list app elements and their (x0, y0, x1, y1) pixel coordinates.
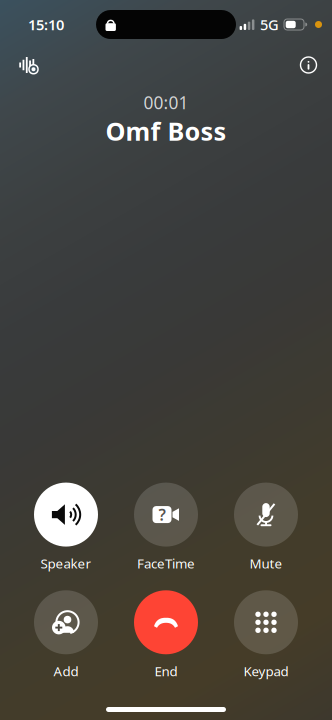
staticText: Add (53, 662, 78, 680)
button[interactable]: End (117, 590, 215, 680)
staticText: FaceTime (137, 555, 195, 572)
staticText: End (154, 662, 177, 680)
staticText: Speaker (40, 555, 91, 572)
button[interactable]: Add (17, 590, 115, 680)
button[interactable]: Keypad (217, 590, 315, 680)
button[interactable]: ? (117, 483, 215, 572)
button[interactable]: Speaker (17, 483, 115, 572)
button[interactable]: Live audio (11, 50, 42, 80)
staticText: 15:10 (28, 15, 64, 34)
staticText: Omf Boss (105, 114, 226, 148)
staticText: 00:01 (143, 91, 188, 114)
staticText: 5G (260, 15, 279, 34)
button[interactable]: Mute (217, 483, 315, 572)
staticText: Mute (249, 555, 282, 572)
staticText: Keypad (243, 662, 288, 680)
staticText: ? (158, 504, 165, 525)
button[interactable]: Call info (294, 50, 323, 79)
